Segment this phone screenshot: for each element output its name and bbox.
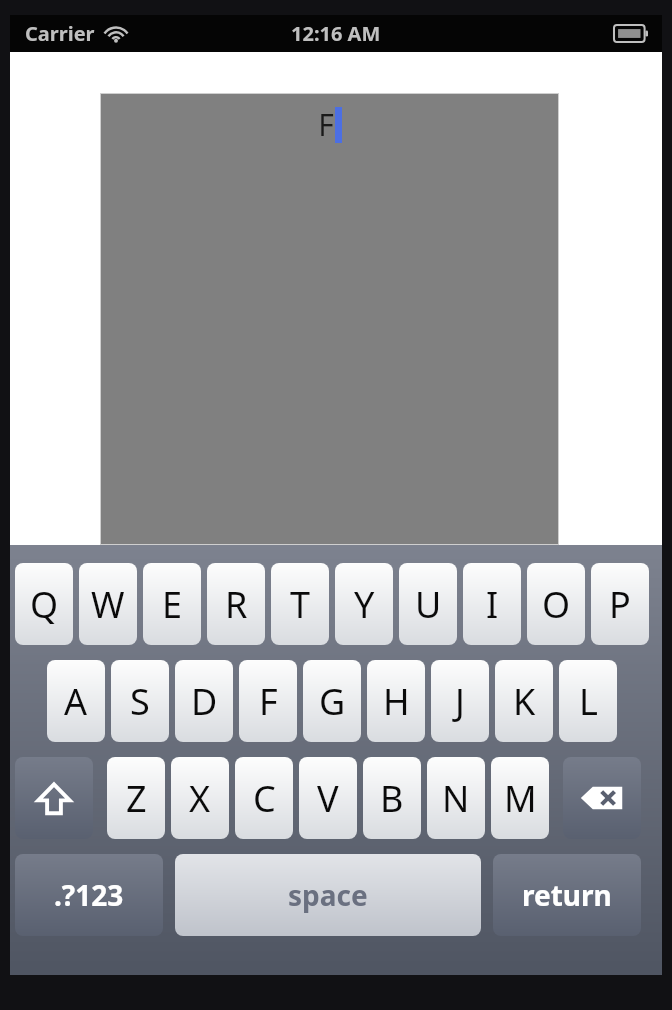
button[interactable]: Shift — [15, 757, 93, 839]
button[interactable]: U — [399, 563, 457, 645]
button[interactable]: B — [363, 757, 421, 839]
staticText: V — [317, 774, 339, 823]
staticText: G — [319, 677, 346, 726]
staticText: F — [259, 677, 278, 726]
button[interactable]: M — [491, 757, 549, 839]
staticText: H — [383, 677, 410, 726]
staticText: A — [64, 677, 88, 726]
staticText: U — [415, 580, 442, 629]
staticText: N — [442, 774, 470, 823]
staticText: I — [486, 580, 499, 629]
button[interactable]: F — [101, 94, 558, 544]
button[interactable]: Z — [107, 757, 165, 839]
button[interactable]: X — [171, 757, 229, 839]
button[interactable]: K — [495, 660, 553, 742]
staticText: T — [290, 580, 311, 629]
staticText: M — [504, 774, 537, 823]
button[interactable]: H — [367, 660, 425, 742]
button[interactable]: I — [463, 563, 521, 645]
button[interactable]: Q — [15, 563, 73, 645]
staticText: C — [253, 774, 276, 823]
staticText: S — [130, 677, 150, 726]
staticText: Q — [30, 580, 59, 629]
staticText: return — [522, 876, 612, 914]
button[interactable]: T — [271, 563, 329, 645]
button[interactable]: R — [207, 563, 265, 645]
button[interactable]: N — [427, 757, 485, 839]
staticText: K — [513, 677, 536, 726]
button[interactable]: space — [175, 854, 481, 936]
button[interactable]: Y — [335, 563, 393, 645]
button[interactable]: J — [431, 660, 489, 742]
staticText: L — [579, 677, 598, 726]
staticText: Carrier — [25, 20, 95, 47]
staticText: O — [542, 580, 571, 629]
button[interactable]: .?123 — [15, 854, 163, 936]
button[interactable]: A — [47, 660, 105, 742]
staticText: X — [189, 774, 211, 823]
staticText: F — [318, 104, 334, 145]
staticText: E — [162, 580, 183, 629]
staticText: B — [380, 774, 404, 823]
button[interactable]: L — [559, 660, 617, 742]
button[interactable]: D — [175, 660, 233, 742]
staticText: Y — [354, 580, 375, 629]
button[interactable]: C — [235, 757, 293, 839]
button[interactable]: F — [239, 660, 297, 742]
button[interactable]: Backspace — [563, 757, 641, 839]
button[interactable]: O — [527, 563, 585, 645]
staticText: space — [288, 876, 368, 914]
staticText: D — [191, 677, 218, 726]
button[interactable]: E — [143, 563, 201, 645]
button[interactable]: return — [493, 854, 641, 936]
staticText: Z — [126, 774, 147, 823]
button[interactable]: W — [79, 563, 137, 645]
staticText: J — [455, 677, 465, 726]
staticText: 12:16 AM — [291, 20, 381, 47]
button[interactable]: G — [303, 660, 361, 742]
staticText: P — [609, 580, 631, 629]
staticText: .?123 — [54, 876, 124, 914]
staticText: R — [225, 580, 248, 629]
button[interactable]: S — [111, 660, 169, 742]
button[interactable]: V — [299, 757, 357, 839]
staticText: W — [91, 580, 125, 629]
button[interactable]: P — [591, 563, 649, 645]
